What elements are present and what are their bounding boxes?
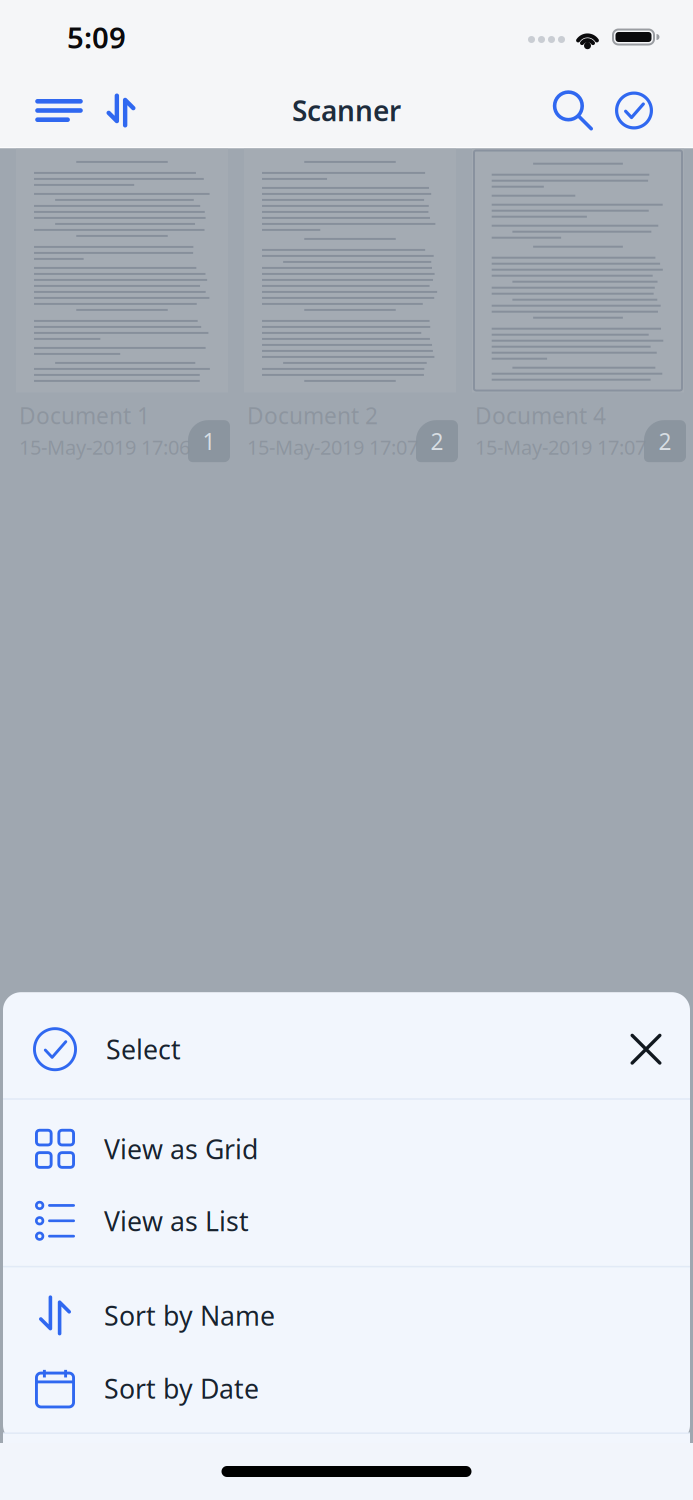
staticText: 15-May-2019 17:07 [247,434,418,460]
staticText: 5:09 [67,17,126,56]
button[interactable]: Sort by Date [3,1352,690,1425]
button[interactable]: Select [3,992,604,1098]
button[interactable]: View as Grid [3,1113,690,1185]
staticText: 15-May-2019 17:07 [475,434,646,460]
staticText: Document 4 [475,400,606,431]
button[interactable]: Document 1 [16,148,228,460]
button[interactable]: Close [604,992,688,1098]
staticText: Select [106,1031,181,1067]
staticText: Sort by Name [104,1298,275,1333]
staticText: Document 1 [19,400,150,431]
button[interactable]: Search [542,78,604,142]
button[interactable]: Select [604,78,664,142]
staticText: Document 2 [247,400,378,431]
staticText: 2 [430,426,443,456]
staticText: Sort by Date [104,1371,259,1406]
button[interactable]: Document 2 [244,148,456,460]
button[interactable]: Document 4 [472,148,684,460]
button[interactable]: Sort by Name [3,1279,690,1352]
staticText: 15-May-2019 17:06 [19,434,190,460]
staticText: Scanner [292,92,401,129]
button[interactable]: Menu [25,78,93,142]
staticText: View as Grid [104,1131,258,1166]
button[interactable]: View as List [3,1185,690,1257]
staticText: 1 [202,426,215,456]
staticText: View as List [104,1203,249,1238]
button[interactable]: Sort [93,78,149,142]
staticText: 2 [658,426,671,456]
